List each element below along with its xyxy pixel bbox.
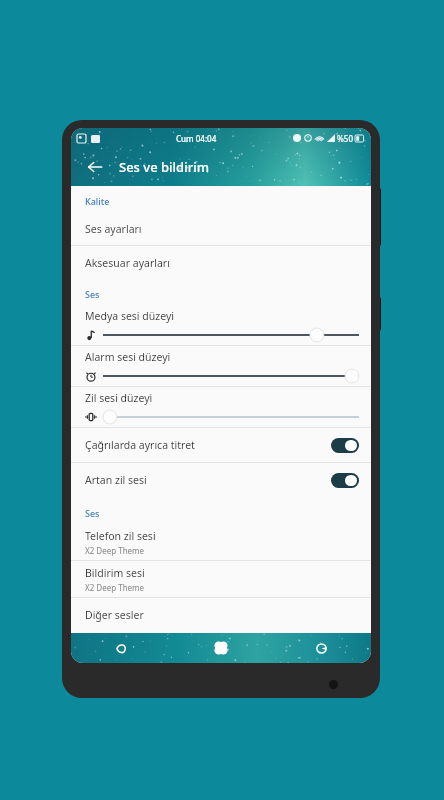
button[interactable]: Bildirim sesi — [71, 561, 371, 597]
button[interactable]: Home — [201, 634, 241, 662]
staticText: %50 — [337, 133, 353, 144]
button[interactable]: Ses ayarları — [71, 212, 371, 245]
button[interactable]: Aksesuar ayarları — [71, 246, 371, 279]
button[interactable]: Recents — [301, 634, 341, 662]
staticText: X2 Deep Theme — [85, 545, 145, 556]
staticText: Ses — [85, 507, 100, 519]
staticText: Telefon zil sesi — [85, 529, 156, 543]
button[interactable]: Back — [79, 151, 111, 183]
staticText: Ses ayarları — [85, 222, 142, 236]
staticText: Cum 04:04 — [176, 133, 217, 144]
staticText: Aksesuar ayarları — [85, 256, 170, 270]
button[interactable]: Medya sesi düzeyi — [71, 305, 371, 345]
staticText: Diğer sesler — [85, 608, 144, 622]
staticText: Alarm sesi düzeyi — [85, 350, 171, 364]
button[interactable]: Telefon zil sesi — [71, 524, 371, 560]
staticText: Zil sesi düzeyi — [85, 391, 153, 405]
button[interactable]: Back — [101, 634, 141, 662]
button[interactable]: Zil sesi düzeyi — [71, 387, 371, 427]
button[interactable]: Diğer sesler — [71, 598, 371, 631]
staticText: Medya sesi düzeyi — [85, 309, 174, 323]
staticText: Bildirim sesi — [85, 566, 145, 580]
button[interactable]: Artan zil sesi — [71, 463, 371, 497]
staticText: Ses — [85, 288, 100, 300]
staticText: Kalite — [85, 195, 110, 207]
staticText: Ses ve bildirim — [119, 158, 209, 176]
staticText: Artan zil sesi — [85, 473, 331, 487]
staticText: Çağrılarda ayrıca titret — [85, 438, 331, 452]
staticText: X2 Deep Theme — [85, 582, 145, 593]
button[interactable]: Çağrılarda ayrıca titret — [71, 428, 371, 462]
button[interactable]: Alarm sesi düzeyi — [71, 346, 371, 386]
